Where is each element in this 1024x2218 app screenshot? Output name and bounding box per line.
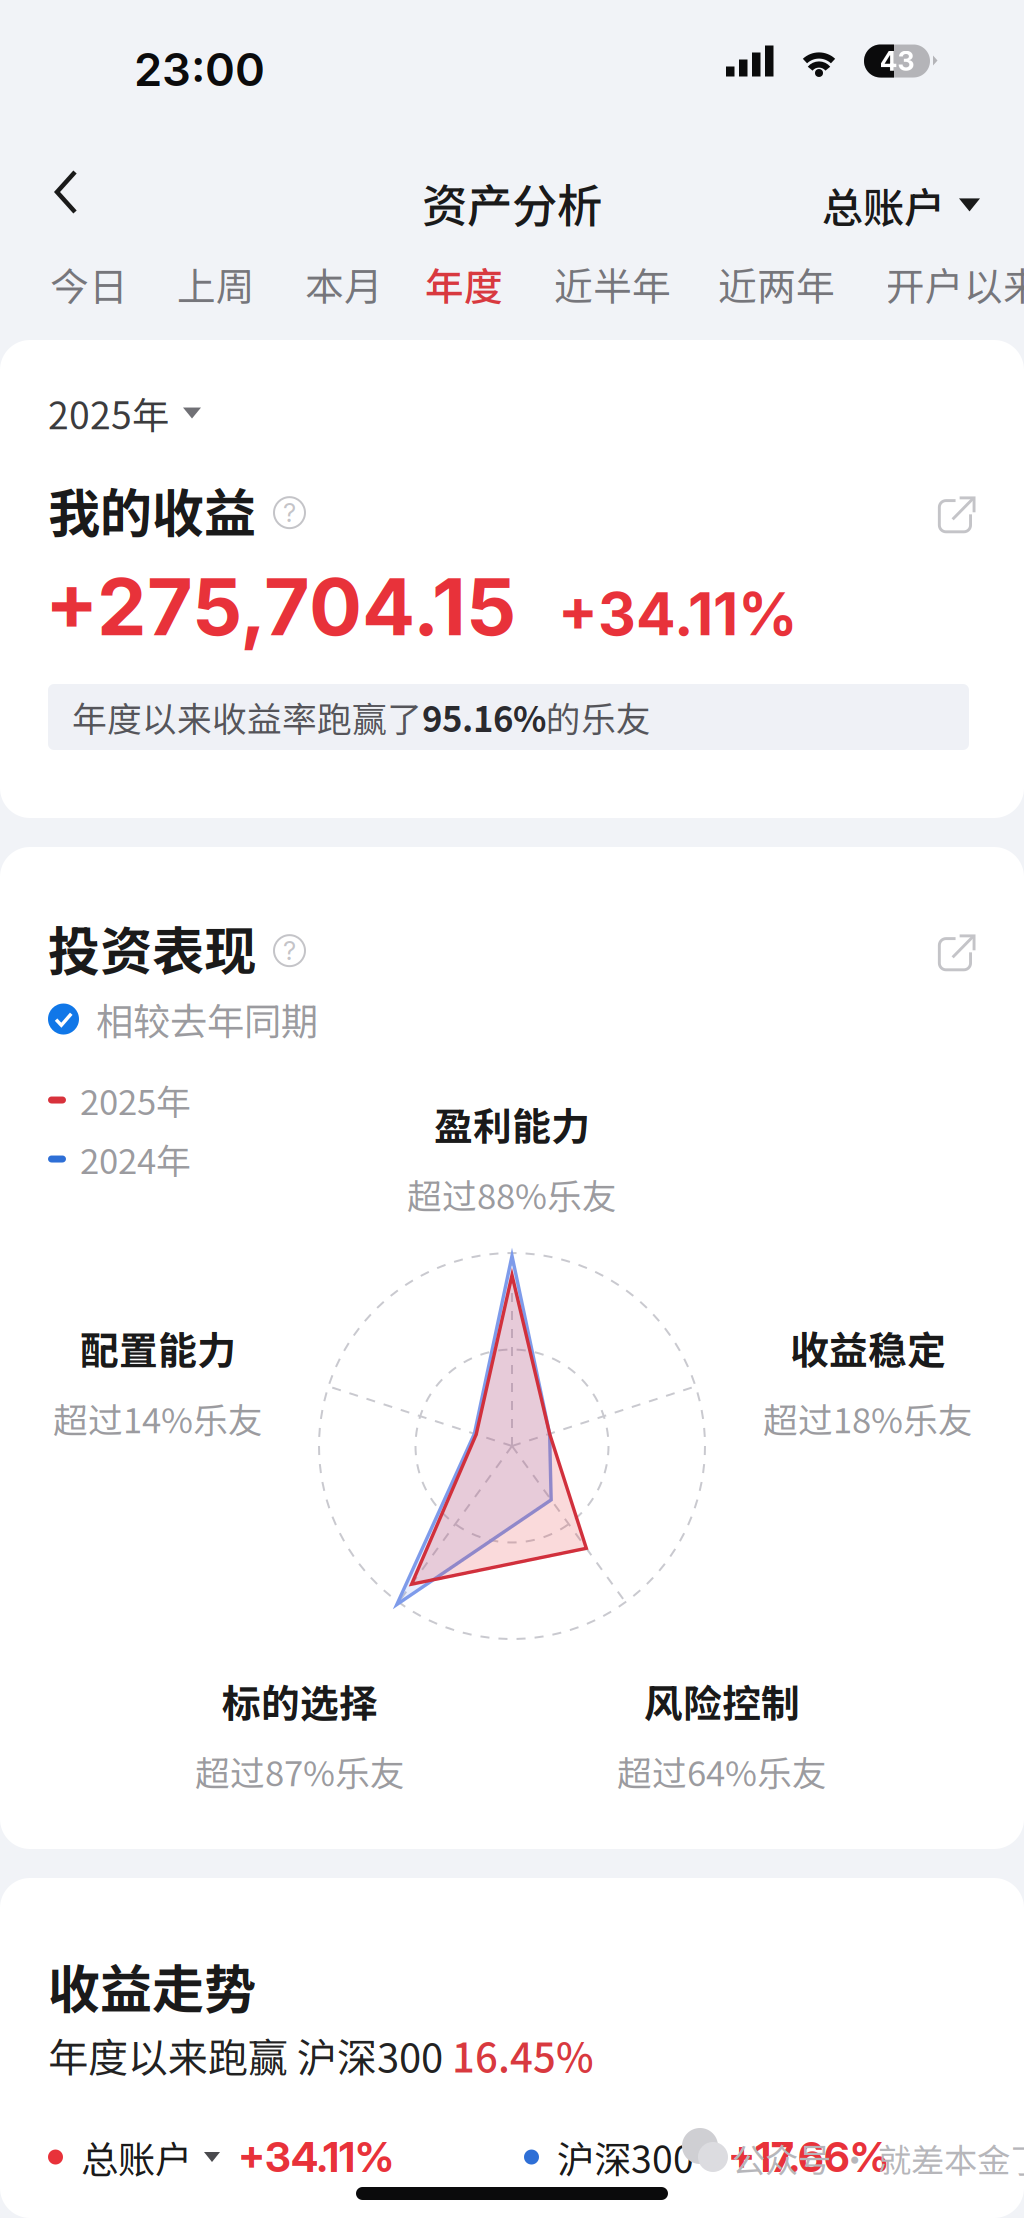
staticText: 2025年 [80, 1075, 191, 1125]
button[interactable]: 本月 [305, 248, 383, 320]
button[interactable]: 沪深300 [524, 2130, 889, 2184]
staticText: 沪深300 [557, 2130, 694, 2184]
staticText: 风险控制 [644, 1673, 800, 1729]
staticText: 的乐友 [546, 692, 651, 742]
staticText: 上周 [177, 256, 255, 312]
staticText: 43 [879, 45, 914, 77]
staticText: 超过88%乐友 [407, 1169, 617, 1219]
staticText: +34.11% [238, 2132, 394, 2182]
staticText: 收益走势 [48, 1948, 256, 2023]
staticText: 95.16% [422, 692, 546, 742]
staticText: 资产分析 [422, 170, 602, 236]
staticText: +17.66% [728, 2132, 889, 2182]
staticText: 我的收益 [48, 472, 256, 547]
button[interactable]: 相较去年同期 [48, 992, 318, 1046]
staticText: +275,704.15 [45, 559, 516, 654]
staticText: 16.45% [452, 2026, 594, 2084]
button[interactable]: 今日 [50, 248, 128, 320]
button[interactable]: 近半年 [554, 248, 671, 320]
button[interactable]: 总账户 [822, 161, 980, 249]
staticText: 年度以来收益率跑赢了 [72, 692, 422, 742]
staticText: 近两年 [718, 256, 835, 312]
button[interactable]: Back [32, 156, 100, 228]
staticText: 盈利能力 [434, 1096, 590, 1152]
staticText: 总账户 [81, 2130, 192, 2184]
button[interactable]: 年度 [425, 248, 503, 320]
staticText: 23:00 [134, 42, 265, 97]
staticText: 年度以来跑赢 沪深300 [48, 2026, 452, 2084]
staticText: 总账户 [822, 175, 945, 235]
button[interactable]: 总账户 [48, 2130, 394, 2184]
button[interactable]: 近两年 [718, 248, 835, 320]
staticText: 超过18%乐友 [763, 1393, 973, 1443]
button[interactable]: 开户以来 [886, 248, 1024, 320]
staticText: 超过87%乐友 [195, 1746, 405, 1796]
staticText: 收益稳定 [790, 1320, 946, 1376]
staticText: 相较去年同期 [96, 992, 318, 1046]
staticText: 标的选择 [222, 1673, 378, 1729]
staticText: 超过14%乐友 [53, 1393, 263, 1443]
staticText: 近半年 [554, 256, 671, 312]
button[interactable]: 2025年 [48, 386, 201, 440]
staticText: 年度 [425, 256, 503, 312]
staticText: 开户以来 [886, 256, 1024, 312]
staticText: ? [283, 935, 296, 966]
staticText: 2024年 [80, 1134, 191, 1184]
button[interactable]: Expand [937, 928, 976, 967]
staticText: +34.11% [558, 578, 798, 649]
staticText: 2025年 [48, 386, 169, 440]
button[interactable]: Expand [937, 490, 976, 529]
staticText: 本月 [305, 256, 383, 312]
staticText: 投资表现 [48, 910, 256, 985]
staticText: 公众号 · 就差本金了 [732, 2134, 1024, 2182]
staticText: 超过64%乐友 [617, 1746, 827, 1796]
button[interactable]: 上周 [177, 248, 255, 320]
staticText: ? [283, 497, 296, 528]
staticText: 配置能力 [80, 1320, 236, 1376]
staticText: 今日 [50, 256, 128, 312]
